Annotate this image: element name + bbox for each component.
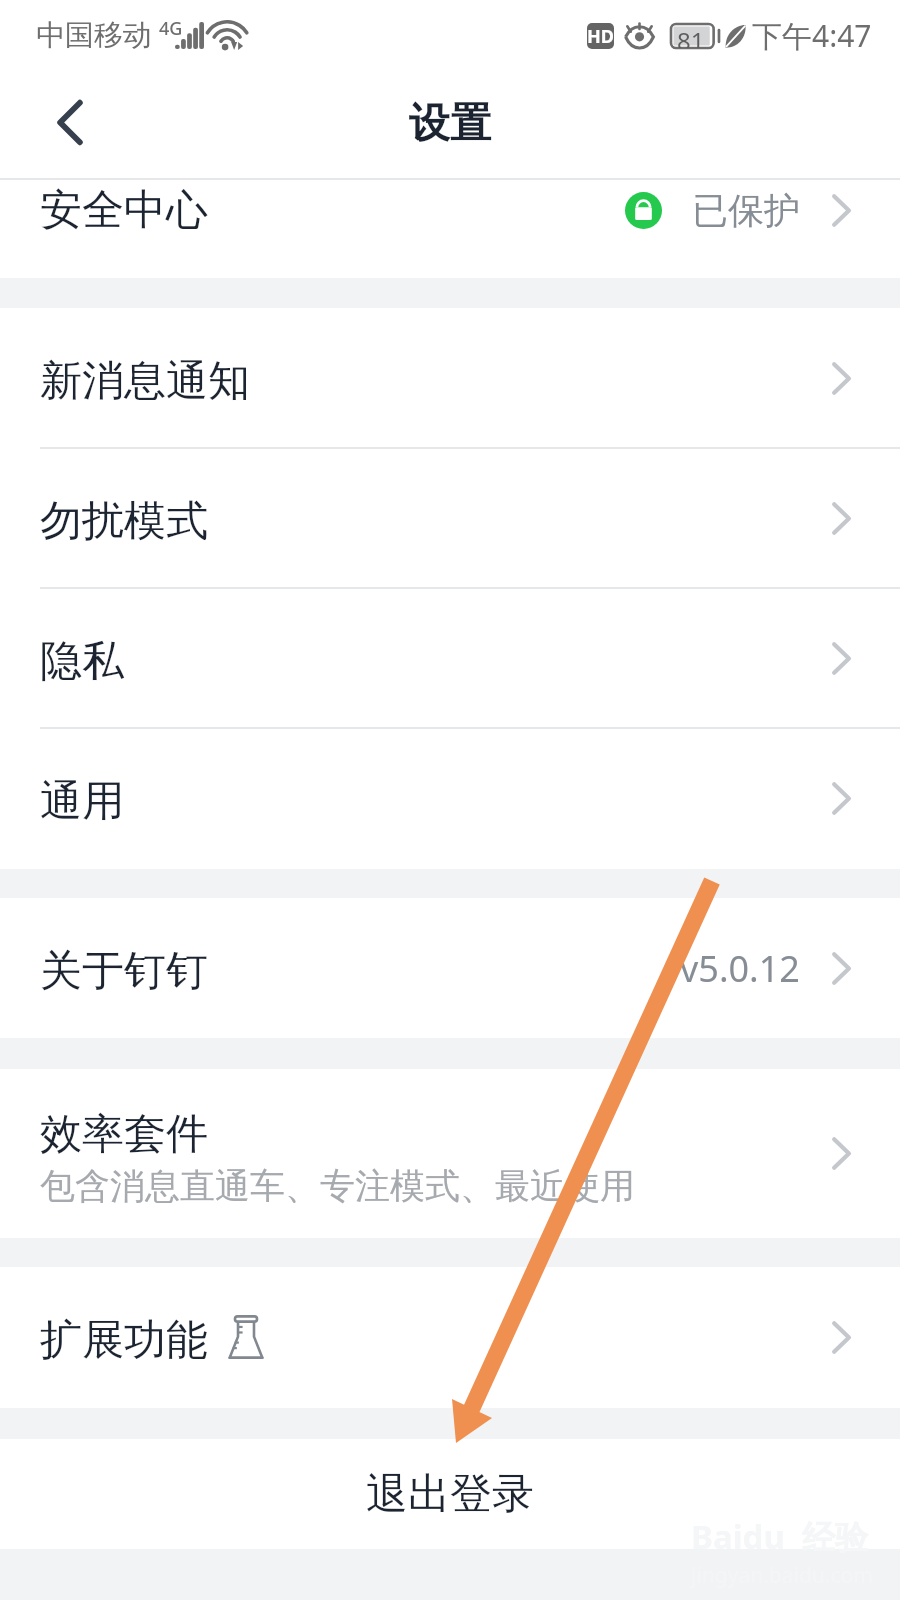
staticText: 81 bbox=[677, 24, 705, 48]
staticText: 已保护 bbox=[692, 188, 800, 233]
staticText: Baidu 经验 bbox=[691, 1514, 869, 1559]
staticText: 退出登录 bbox=[366, 1468, 534, 1521]
staticText: 设置 bbox=[409, 98, 491, 150]
staticText: 扩展功能 bbox=[40, 1314, 208, 1367]
staticText: 通用 bbox=[40, 775, 124, 828]
staticText: 勿扰模式 bbox=[40, 495, 208, 548]
staticText: 下午4:47 bbox=[752, 15, 872, 56]
button[interactable]: 扩展功能 bbox=[0, 1267, 900, 1408]
button[interactable]: 安全中心 bbox=[0, 180, 900, 278]
button[interactable]: 关于钉钉 bbox=[0, 898, 900, 1038]
staticText: 关于钉钉 bbox=[40, 945, 208, 998]
button[interactable]: 效率套件 bbox=[0, 1069, 900, 1238]
staticText: HD bbox=[587, 24, 614, 49]
staticText: 隐私 bbox=[40, 635, 124, 688]
staticText: 效率套件 bbox=[40, 1108, 208, 1161]
staticText: v5.0.12 bbox=[680, 944, 800, 993]
button[interactable]: 新消息通知 bbox=[0, 308, 900, 448]
button[interactable]: 隐私 bbox=[0, 588, 900, 728]
staticText: 4G bbox=[159, 16, 183, 41]
staticText: 新消息通知 bbox=[40, 355, 250, 408]
button[interactable]: 通用 bbox=[0, 728, 900, 869]
button[interactable]: 退出登录 bbox=[0, 1439, 900, 1549]
staticText: 中国移动 bbox=[36, 17, 152, 54]
button[interactable]: 勿扰模式 bbox=[0, 448, 900, 588]
staticText: 安全中心 bbox=[40, 184, 208, 237]
staticText: 包含消息直通车、专注模式、最近使用 bbox=[40, 1164, 635, 1208]
button[interactable]: Back bbox=[34, 88, 106, 160]
